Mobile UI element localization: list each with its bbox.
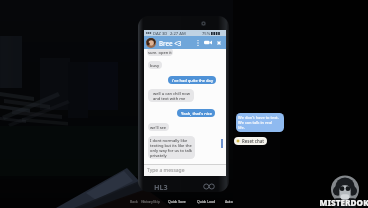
staticText: well u can chill now and text with me [153, 91, 190, 101]
staticText: Bree <3 [159, 39, 182, 47]
staticText: DAZ 3D [153, 31, 168, 37]
button[interactable]: busy [148, 61, 162, 69]
staticText: We don't have to text. We can talk in re… [238, 115, 279, 130]
button[interactable]: Auto [225, 199, 233, 207]
button[interactable]: I dont normally like texting but its lik… [148, 136, 195, 159]
button[interactable]: Quick Save [168, 199, 186, 207]
staticText: History [141, 199, 153, 204]
button[interactable]: Video call [203, 39, 213, 46]
staticText: MISTERDOKTOR [319, 197, 368, 208]
button[interactable]: we'll see [148, 123, 169, 131]
staticText: Reset chat [242, 138, 264, 144]
button[interactable]: Type a message [144, 165, 226, 176]
button[interactable]: Skip [153, 199, 160, 207]
staticText: Type a message [147, 167, 185, 174]
button[interactable]: Quick Load [197, 199, 216, 207]
staticText: sure. open it [148, 50, 172, 55]
button[interactable]: Back [130, 199, 138, 207]
staticText: Back [130, 199, 138, 204]
button[interactable]: i've had quite the day [168, 76, 216, 84]
staticText: we'll see [150, 125, 167, 130]
staticText: Auto [225, 199, 233, 204]
button[interactable]: Yeah, that's nice [177, 109, 215, 117]
staticText: 75% [202, 31, 211, 37]
staticText: 2:27 AM [170, 31, 186, 37]
staticText: Quick Save [168, 199, 186, 204]
staticText: Skip [153, 199, 160, 204]
staticText: HL3 [154, 182, 168, 192]
button[interactable]: More options [196, 38, 200, 48]
staticText: busy [150, 63, 160, 68]
button[interactable]: Bree <3 [144, 36, 226, 49]
button[interactable]: Reset chat [234, 137, 267, 145]
button[interactable]: well u can chill now and text with me [148, 89, 194, 102]
staticText: i've had quite the day [172, 78, 213, 83]
button[interactable]: sure. open it [147, 49, 173, 56]
staticText: Yeah, that's nice [181, 111, 212, 116]
staticText: I dont normally like texting but its lik… [150, 138, 193, 158]
button[interactable]: We don't have to text. We can talk in re… [236, 113, 284, 132]
button[interactable]: Close [216, 40, 222, 46]
button[interactable]: History [141, 199, 153, 207]
staticText: Quick Load [197, 199, 216, 204]
